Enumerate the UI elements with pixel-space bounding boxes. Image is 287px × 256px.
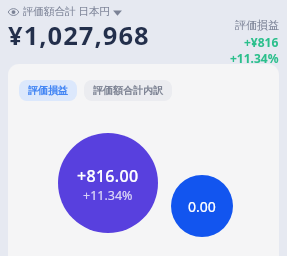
staticText: +816.00 — [77, 165, 139, 187]
button[interactable]: 評価額合計内訳 — [84, 80, 172, 101]
staticText: 評価損益 — [28, 84, 68, 97]
staticText: +11.34% — [83, 187, 133, 204]
staticText: ¥1,027,968 — [8, 18, 150, 53]
staticText: 評価額合計内訳 — [93, 84, 163, 97]
button[interactable]: +816.00 — [58, 133, 158, 233]
staticText: +11.34% — [230, 50, 279, 66]
staticText: 評価額合計 日本円 — [23, 4, 110, 18]
staticText: 0.00 — [188, 197, 216, 216]
staticText: +¥816 — [244, 34, 279, 50]
button[interactable]: 評価損益 — [19, 80, 77, 101]
button[interactable]: 評価額合計 日本円 通貨を選択 — [8, 4, 122, 18]
button[interactable]: 0.00 — [171, 175, 233, 237]
staticText: 評価損益 — [235, 18, 279, 32]
